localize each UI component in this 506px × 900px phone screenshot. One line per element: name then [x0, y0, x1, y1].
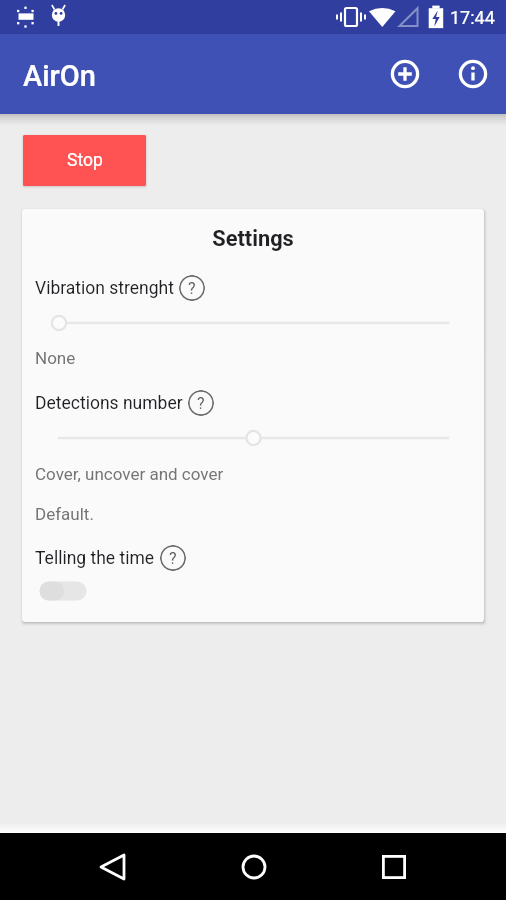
button[interactable]: Home: [229, 833, 278, 900]
button[interactable]: Back: [88, 833, 137, 900]
staticText: ?: [197, 394, 205, 413]
staticText: AirOn: [23, 59, 96, 93]
staticText: Stop: [67, 150, 103, 171]
button[interactable]: Info: [449, 50, 497, 98]
staticText: ?: [169, 549, 177, 568]
button[interactable]: Help: [179, 275, 205, 301]
staticText: Settings: [22, 226, 484, 252]
staticText: 17:44: [450, 7, 495, 28]
staticText: ?: [188, 279, 196, 298]
staticText: Default.: [35, 504, 94, 524]
button[interactable]: Recent apps: [369, 833, 418, 900]
button[interactable]: Help: [188, 390, 214, 416]
button[interactable]: Help: [160, 545, 186, 571]
button[interactable]: Telling the time toggle: [38, 578, 94, 604]
staticText: Telling the time: [35, 548, 155, 569]
staticText: Detections number: [35, 393, 183, 414]
staticText: Vibration strenght: [35, 278, 174, 299]
staticText: None: [35, 348, 76, 368]
staticText: Cover, uncover and cover: [35, 464, 224, 484]
button[interactable]: Stop: [23, 135, 146, 186]
button[interactable]: Add: [381, 50, 429, 98]
